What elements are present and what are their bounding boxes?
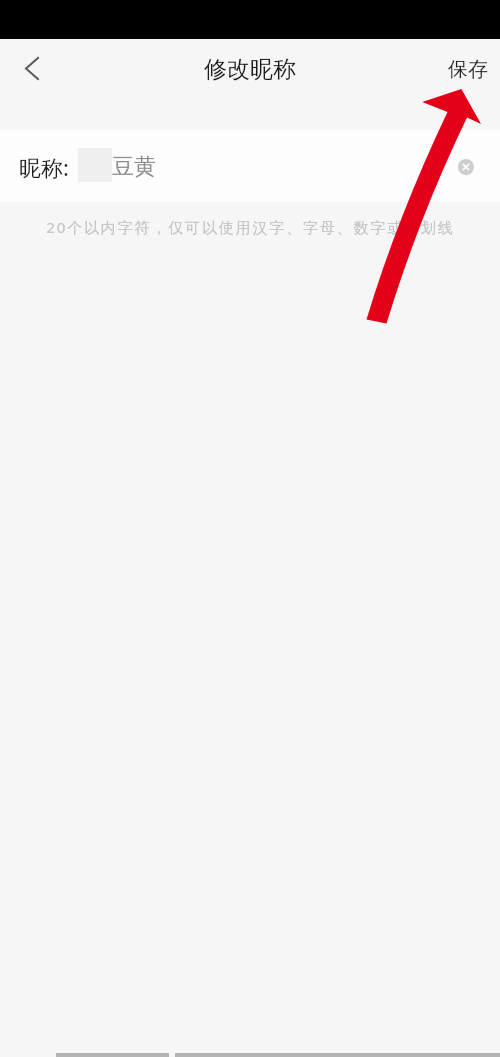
button[interactable]: Back <box>10 46 54 90</box>
button[interactable]: Clear text <box>451 152 481 182</box>
staticText: 保存 <box>448 57 488 82</box>
staticText: 豆黄 <box>112 153 156 181</box>
staticText: 修改昵称 <box>204 55 296 84</box>
staticText: 昵称: <box>19 152 69 182</box>
staticText: 20个以内字符，仅可以使用汉字、字母、数字或下划线 <box>46 217 455 237</box>
button[interactable]: 保存 <box>436 51 500 88</box>
